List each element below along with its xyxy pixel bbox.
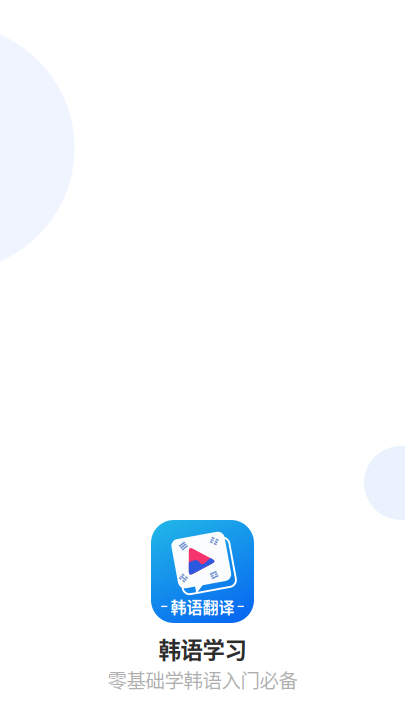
staticText: 韩语翻译 bbox=[170, 595, 234, 618]
staticText: 零基础学韩语入门必备 bbox=[107, 665, 297, 694]
staticText: 韩语学习 bbox=[158, 633, 246, 665]
